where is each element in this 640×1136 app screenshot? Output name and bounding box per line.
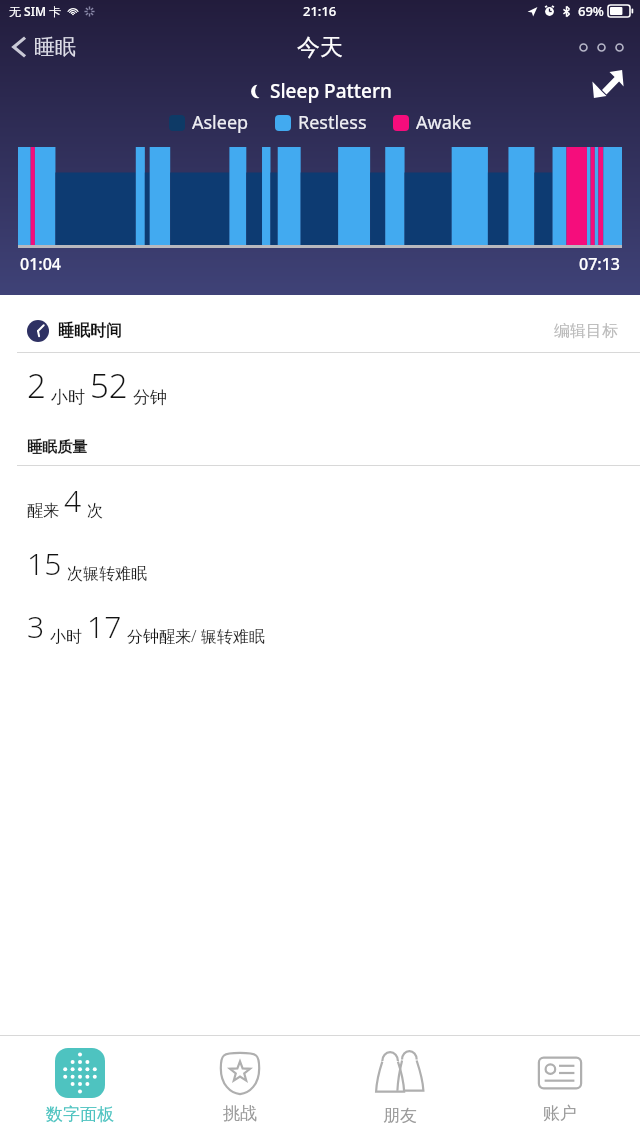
staticText: 次 (87, 501, 103, 521)
staticText: Awake (416, 110, 472, 135)
button[interactable]: Expand chart (586, 62, 630, 106)
staticText: Sleep Pattern (270, 78, 392, 104)
button[interactable]: Restless (275, 110, 367, 135)
button[interactable]: 编辑目标 (554, 321, 618, 341)
staticText: 睡眠 (34, 34, 76, 60)
button[interactable]: More options (563, 22, 640, 72)
staticText: 朋友 (383, 1105, 417, 1126)
staticText: 52 (90, 363, 128, 408)
staticText: 01:04 (20, 253, 61, 275)
button[interactable]: 挑战 (160, 1036, 320, 1136)
button[interactable]: Awake (393, 110, 472, 135)
staticText: 小时 (51, 387, 85, 408)
staticText: 分钟 (133, 387, 167, 408)
staticText: 数字面板 (46, 1104, 114, 1125)
staticText: Restless (298, 110, 367, 135)
staticText: 次辗转难眠 (67, 564, 147, 584)
staticText: 4 (64, 480, 82, 521)
staticText: 07:13 (579, 253, 620, 275)
staticText: 今天 (297, 33, 343, 62)
staticText: 账户 (543, 1103, 577, 1124)
staticText: 睡眠时间 (58, 321, 122, 341)
button[interactable]: 数字面板 (0, 1036, 160, 1136)
staticText: 17 (87, 606, 122, 647)
staticText: 醒来 (27, 501, 59, 521)
staticText: 21:16 (303, 2, 337, 20)
staticText: 分钟醒来/ 辗转难眠 (127, 625, 265, 647)
staticText: 编辑目标 (554, 321, 618, 341)
button[interactable]: Asleep (169, 110, 249, 135)
staticText: 睡眠质量 (27, 438, 87, 457)
staticText: 无 SIM 卡 (9, 3, 62, 19)
staticText: 小时 (50, 627, 82, 647)
staticText: 挑战 (223, 1103, 257, 1124)
staticText: 3 (27, 606, 45, 647)
staticText: 15 (27, 543, 62, 584)
button[interactable]: 朋友 (320, 1036, 480, 1136)
button[interactable]: 睡眠 (0, 22, 88, 72)
button[interactable]: 账户 (480, 1036, 640, 1136)
staticText: Asleep (192, 110, 249, 135)
staticText: 2 (27, 363, 46, 408)
staticText: 69% (578, 2, 604, 20)
